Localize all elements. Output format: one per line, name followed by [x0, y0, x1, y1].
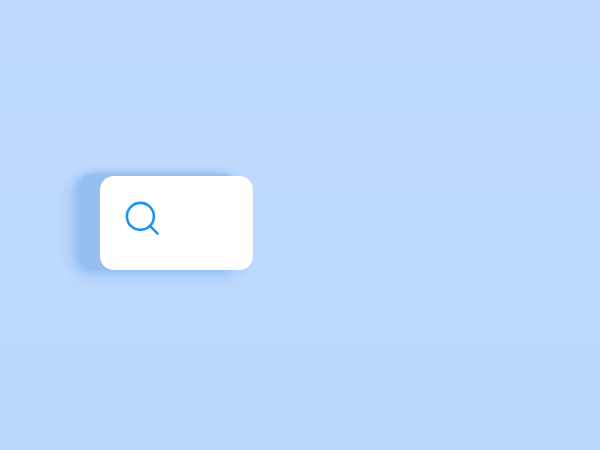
button[interactable]: Search: [100, 176, 253, 270]
